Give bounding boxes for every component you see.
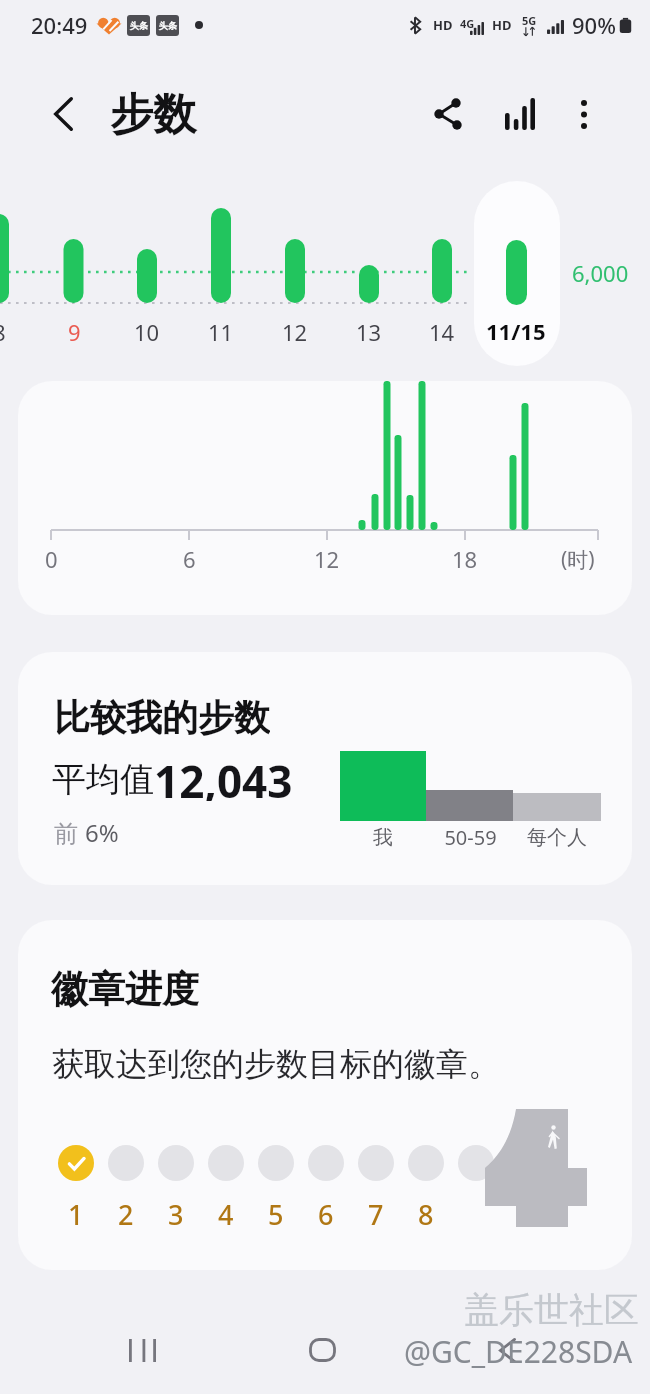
staticText: 比较我的步数 xyxy=(54,695,270,739)
staticText: 5 xyxy=(268,1196,284,1233)
staticText: 6 xyxy=(183,544,196,574)
staticText: 11 xyxy=(208,317,234,347)
button[interactable]: 徽章进度 xyxy=(18,920,632,1270)
staticText: 每个人 xyxy=(527,825,587,850)
staticText: 10 xyxy=(134,317,160,347)
button[interactable]: Back xyxy=(31,72,95,156)
staticText: 14 xyxy=(429,317,455,347)
button[interactable]: 0 xyxy=(18,381,632,615)
staticText: 8 xyxy=(418,1196,434,1233)
staticText: 12 xyxy=(314,544,340,574)
staticText: 徽章进度 xyxy=(51,966,199,1012)
staticText: 90% xyxy=(572,10,616,40)
staticText: 4 xyxy=(218,1196,234,1233)
staticText: 3 xyxy=(168,1196,184,1233)
staticText: 12 xyxy=(282,317,308,347)
staticText: 前 xyxy=(54,816,85,849)
staticText: 步数 xyxy=(110,88,196,142)
staticText: 8 xyxy=(0,317,6,347)
staticText: 6 xyxy=(318,1196,334,1233)
staticText: 平均值 xyxy=(52,758,154,801)
staticText: 12,043 xyxy=(154,751,293,801)
staticText: 2 xyxy=(118,1196,134,1233)
staticText: 1 xyxy=(68,1196,84,1233)
staticText: 盖乐世社区 xyxy=(464,1288,639,1332)
button[interactable]: Share xyxy=(414,72,482,156)
staticText: (时) xyxy=(561,545,595,574)
button[interactable]: Home xyxy=(266,1321,378,1379)
button[interactable]: 比较我的步数 xyxy=(18,652,632,885)
staticText: 0 xyxy=(45,544,58,574)
staticText: HD xyxy=(492,16,512,34)
staticText: 头条 xyxy=(130,20,148,31)
button[interactable]: More options xyxy=(551,72,617,156)
staticText: 13 xyxy=(356,317,382,347)
staticText: 18 xyxy=(452,544,478,574)
button[interactable]: Statistics xyxy=(486,72,554,156)
button[interactable]: Back xyxy=(451,1321,563,1379)
staticText: 6% xyxy=(85,816,119,849)
staticText: 我 xyxy=(373,825,393,850)
staticText: 50-59 xyxy=(444,824,497,851)
staticText: @GC_DE228SDA xyxy=(404,1331,633,1372)
staticText: 9 xyxy=(68,317,81,347)
staticText: 5G xyxy=(522,13,537,28)
staticText: 6,000 xyxy=(572,258,629,288)
staticText: 20:49 xyxy=(31,10,88,40)
staticText: 获取达到您的步数目标的徽章。 xyxy=(52,1044,500,1084)
staticText: HD xyxy=(433,16,453,34)
staticText: 11/15 xyxy=(486,316,546,346)
staticText: 4G xyxy=(460,16,475,31)
button[interactable]: Recents xyxy=(86,1321,198,1379)
staticText: 头条 xyxy=(159,20,177,31)
staticText: 7 xyxy=(368,1196,384,1233)
